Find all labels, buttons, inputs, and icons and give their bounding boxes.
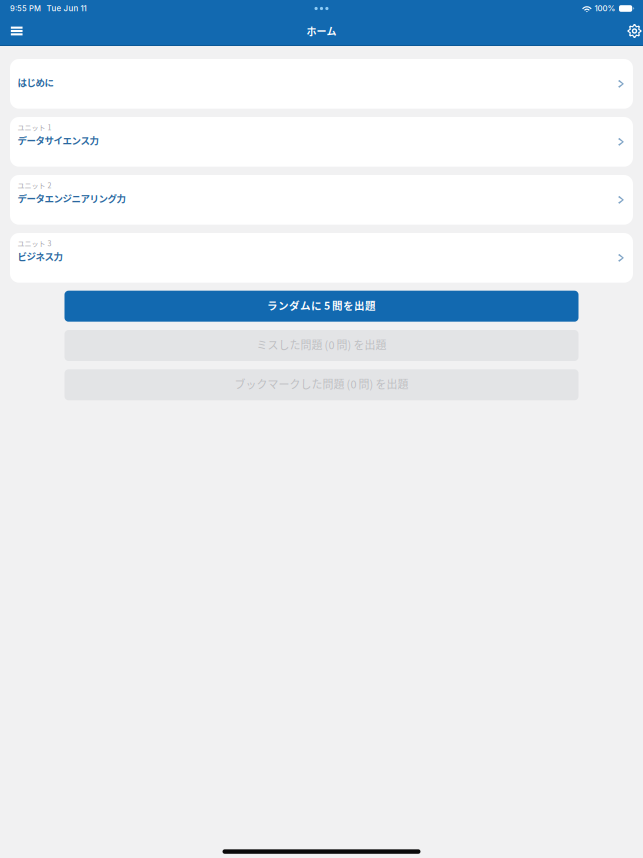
staticText: ブックマークした問題 (0 問) を出題 [234, 376, 408, 392]
staticText: ユニット 2 [17, 180, 51, 190]
button[interactable]: Settings [621, 17, 643, 45]
staticText: ユニット 1 [17, 122, 51, 132]
button[interactable]: ランダムに 5 問を出題 [64, 291, 578, 322]
staticText: ホーム [306, 24, 336, 38]
button[interactable]: ブックマークした問題 (0 問) を出題 [64, 369, 578, 400]
staticText: ランダムに 5 問を出題 [267, 297, 376, 313]
staticText: ミスした問題 (0 問) を出題 [256, 336, 386, 352]
button[interactable]: ユニット 1 [10, 117, 633, 167]
staticText: ユニット 3 [17, 238, 51, 248]
staticText: データエンジニアリング力 [17, 191, 125, 205]
button[interactable]: Menu [3, 17, 30, 45]
staticText: はじめに [17, 75, 53, 89]
button[interactable]: ミスした問題 (0 問) を出題 [64, 330, 578, 361]
staticText: 100% [594, 4, 615, 13]
staticText: Tue Jun 11 [46, 4, 86, 13]
button[interactable]: ユニット 2 [10, 175, 633, 225]
staticText: データサイエンス力 [17, 133, 98, 147]
staticText: ビジネス力 [17, 249, 62, 263]
button[interactable]: ユニット 3 [10, 233, 633, 283]
staticText: 9:55 PM [10, 4, 41, 13]
button[interactable]: はじめに [10, 59, 633, 109]
